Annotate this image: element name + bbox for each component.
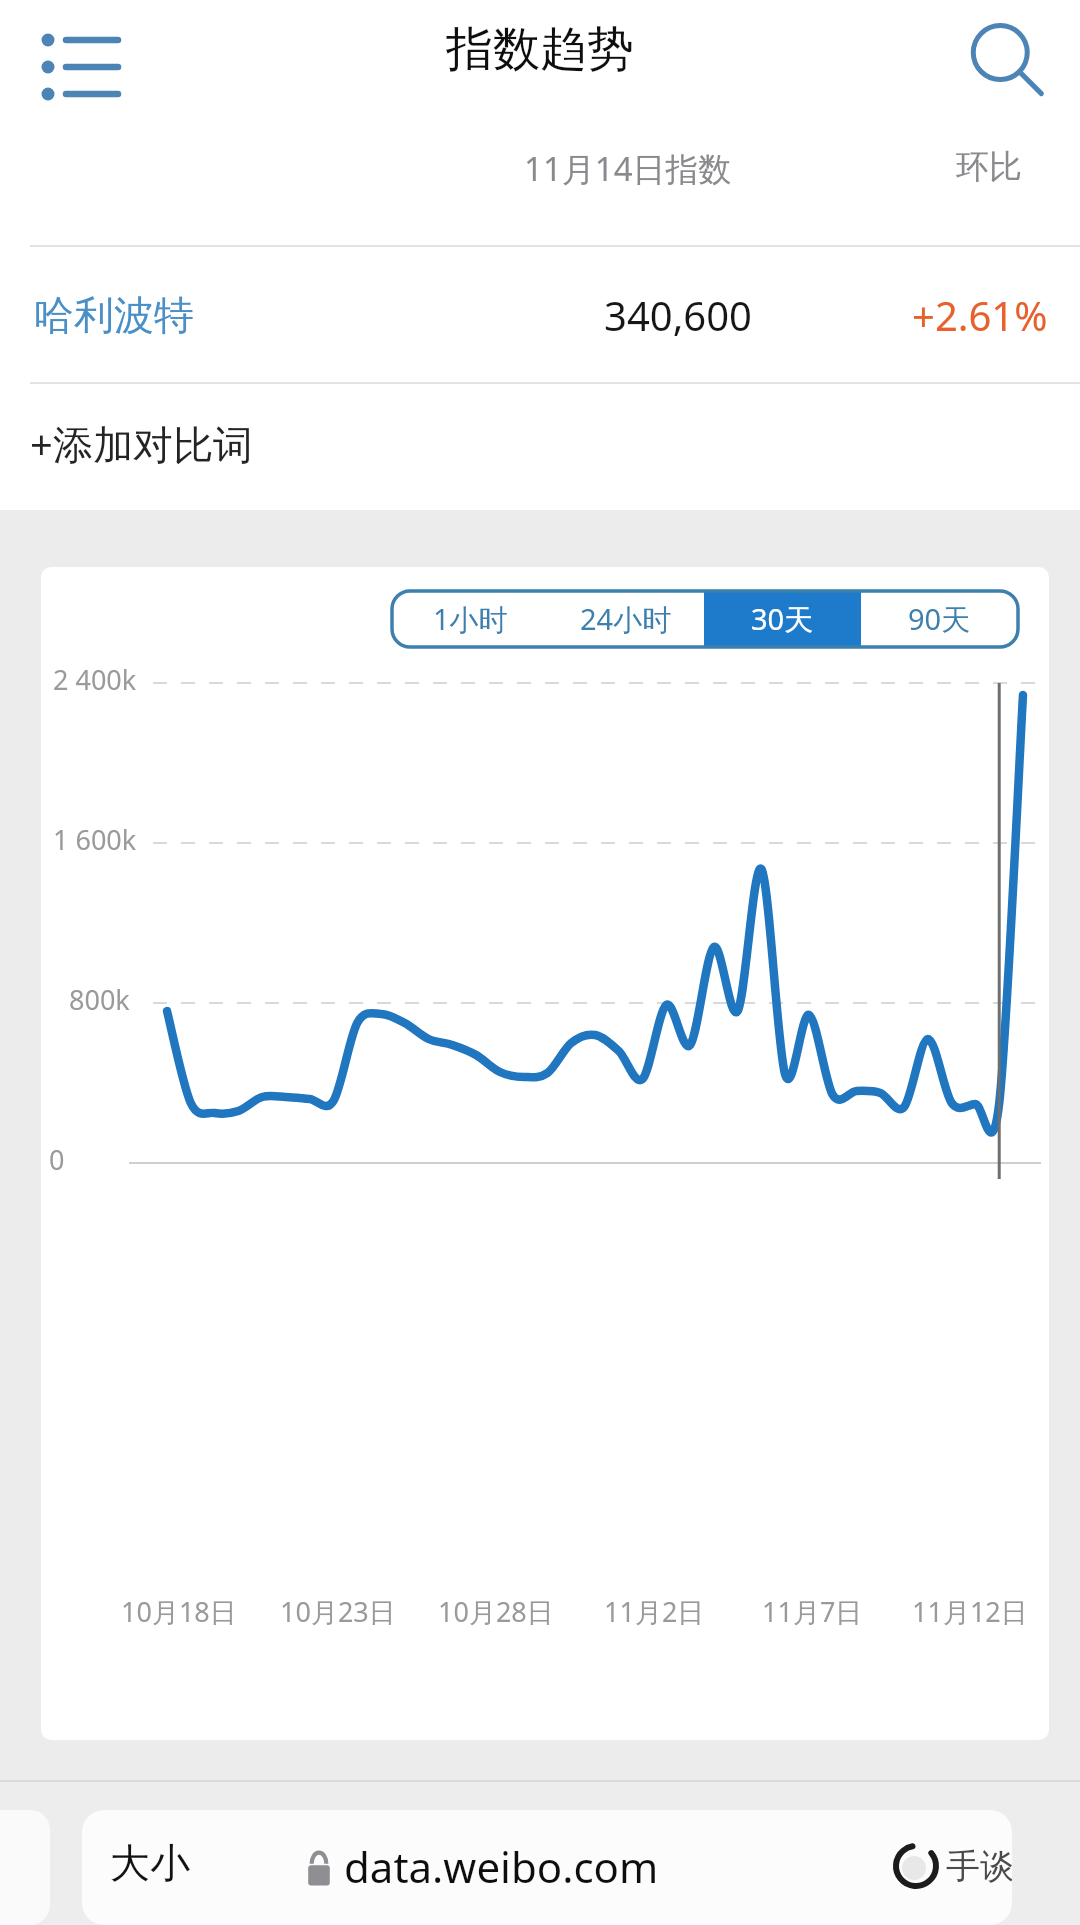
- staticText: 1 600k: [53, 821, 137, 858]
- staticText: 800k: [69, 981, 130, 1018]
- button[interactable]: 24小时: [548, 591, 704, 647]
- button[interactable]: 大小: [82, 1810, 1012, 1925]
- button[interactable]: +添加对比词: [16, 404, 267, 483]
- staticText: 0: [49, 1141, 65, 1178]
- staticText: 2 400k: [53, 661, 137, 698]
- button[interactable]: Menu: [26, 12, 130, 116]
- staticText: 30天: [751, 599, 814, 639]
- staticText: data.weibo.com: [344, 1838, 659, 1895]
- staticText: 10月28日: [438, 1593, 554, 1630]
- staticText: 手谈姬: [946, 1845, 1012, 1888]
- button[interactable]: 30天: [704, 591, 861, 647]
- staticText: 指数趋势: [0, 20, 1080, 79]
- staticText: 11月2日: [604, 1593, 705, 1630]
- staticText: +添加对比词: [30, 416, 253, 471]
- staticText: 340,600: [604, 288, 752, 342]
- staticText: 11月7日: [762, 1593, 863, 1630]
- staticText: 大小: [110, 1838, 190, 1888]
- staticText: 24小时: [580, 599, 672, 639]
- staticText: 环比: [956, 146, 1022, 188]
- staticText: 11月12日: [912, 1593, 1028, 1630]
- staticText: 1小时: [433, 599, 508, 639]
- button[interactable]: 90天: [861, 591, 1018, 647]
- staticText: 哈利波特: [34, 290, 194, 340]
- staticText: 10月18日: [121, 1593, 237, 1630]
- staticText: +2.61%: [912, 288, 1048, 342]
- button[interactable]: 1小时: [392, 591, 548, 647]
- staticText: 90天: [908, 599, 971, 639]
- staticText: 11月14日指数: [524, 146, 732, 191]
- button[interactable]: Search: [958, 12, 1058, 112]
- staticText: 10月23日: [280, 1593, 396, 1630]
- button[interactable]: 哈利波特: [0, 247, 1080, 382]
